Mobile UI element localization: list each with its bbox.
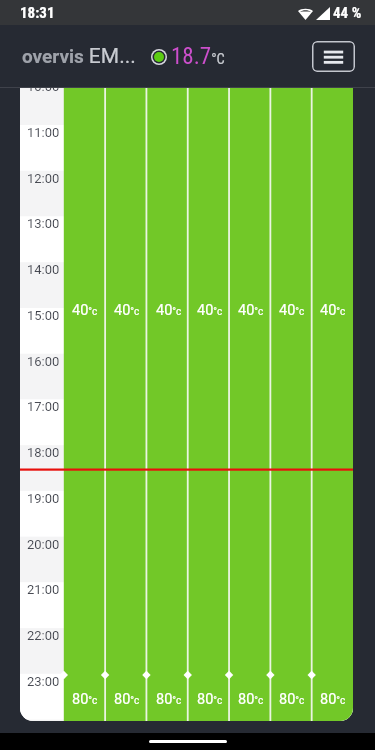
staticText: 40°c: [320, 302, 346, 319]
staticText: 14:00: [27, 262, 60, 277]
staticText: overvis EM...: [22, 44, 136, 69]
staticText: 40°c: [197, 302, 223, 319]
button[interactable]: 40°c: [230, 88, 271, 105]
staticText: 80°c: [320, 691, 346, 708]
staticText: 20:00: [27, 537, 60, 552]
staticText: 44 %: [333, 4, 362, 22]
staticText: 80°c: [72, 691, 98, 708]
button[interactable]: 40°c: [312, 88, 353, 105]
staticText: 11:00: [27, 125, 60, 140]
staticText: 16:00: [27, 354, 60, 369]
button[interactable]: Menu: [312, 41, 355, 72]
staticText: 15:00: [27, 308, 60, 323]
button[interactable]: 40°c: [148, 88, 189, 105]
button[interactable]: 40°c: [271, 88, 312, 105]
staticText: 80°c: [156, 691, 182, 708]
button[interactable]: 40°c: [189, 88, 230, 105]
staticText: 23:00: [27, 674, 60, 689]
staticText: 18:00: [27, 445, 60, 460]
staticText: 17:00: [27, 399, 60, 414]
staticText: 80°c: [197, 691, 223, 708]
staticText: 40°c: [238, 302, 264, 319]
staticText: 40°c: [72, 302, 98, 319]
staticText: 18.7°C: [171, 43, 225, 70]
staticText: 18:31: [20, 4, 55, 22]
staticText: 40°c: [279, 302, 305, 319]
staticText: 80°c: [238, 691, 264, 708]
button[interactable]: 40°c: [106, 88, 148, 105]
staticText: 21:00: [27, 582, 60, 597]
staticText: 40°c: [114, 302, 140, 319]
staticText: 22:00: [27, 628, 60, 643]
staticText: 80°c: [114, 691, 140, 708]
staticText: 19:00: [27, 491, 60, 506]
button[interactable]: 40°c: [64, 88, 106, 105]
staticText: 13:00: [27, 216, 60, 231]
staticText: 12:00: [27, 171, 60, 186]
staticText: 10:00: [27, 88, 60, 94]
staticText: 40°c: [156, 302, 182, 319]
staticText: 80°c: [279, 691, 305, 708]
